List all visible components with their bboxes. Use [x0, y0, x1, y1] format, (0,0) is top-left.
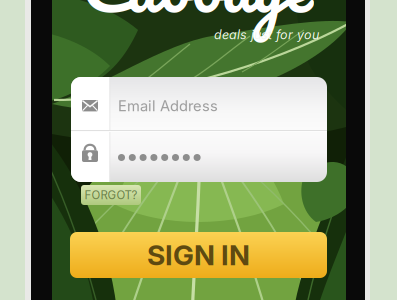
button[interactable]: SIGN IN [70, 232, 327, 278]
button[interactable]: FORGOT? [81, 185, 141, 205]
staticText: SIGN IN [147, 238, 250, 272]
staticText: Email Address [118, 97, 218, 115]
staticText: deals just for you [214, 27, 319, 42]
button[interactable]: Email Address [71, 77, 327, 130]
staticText: Cabbage [81, 0, 312, 43]
staticText: FORGOT? [84, 188, 137, 202]
button[interactable] [71, 131, 327, 182]
